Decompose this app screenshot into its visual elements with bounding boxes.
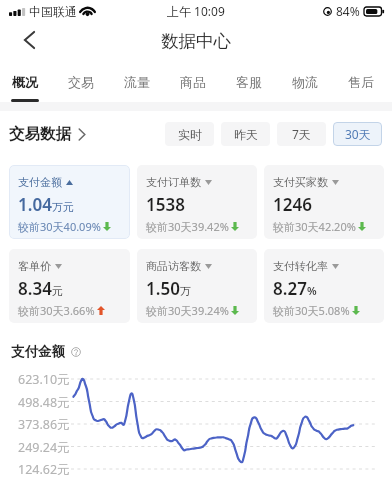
staticText: 8.27 xyxy=(273,277,307,300)
staticText: 较前30天5.08% xyxy=(273,303,350,318)
button[interactable]: 昨天 xyxy=(221,122,270,146)
button[interactable]: 交易数据 xyxy=(9,124,86,144)
staticText: 流量 xyxy=(124,74,150,90)
button[interactable]: 流量 xyxy=(109,60,165,104)
staticText: 249.24元 xyxy=(18,439,70,456)
button[interactable]: 客单价 xyxy=(9,249,130,323)
button[interactable]: 30天 xyxy=(333,122,382,146)
staticText: 1246 xyxy=(273,193,312,216)
staticText: 1538 xyxy=(146,193,185,216)
staticText: 7天 xyxy=(292,126,311,142)
staticText: 498.48元 xyxy=(18,394,70,411)
staticText: 较前30天39.24% xyxy=(146,303,229,318)
staticText: 1.04 xyxy=(18,193,52,216)
staticText: 客单价 xyxy=(18,259,51,273)
staticText: 8.34 xyxy=(18,277,52,300)
staticText: 万 xyxy=(180,284,191,298)
staticText: 较前30天40.09% xyxy=(18,219,101,234)
staticText: 交易数据 xyxy=(9,124,71,144)
staticText: 较前30天3.66% xyxy=(18,303,95,318)
staticText: 物流 xyxy=(292,74,318,90)
staticText: 支付买家数 xyxy=(273,175,328,189)
button[interactable]: 售后 xyxy=(333,60,389,104)
staticText: 昨天 xyxy=(234,127,258,142)
button[interactable]: 商品 xyxy=(165,60,221,104)
staticText: 623.10元 xyxy=(18,371,70,388)
staticText: 交易 xyxy=(68,74,94,90)
button[interactable]: 支付订单数 xyxy=(137,165,257,239)
staticText: 数据中心 xyxy=(161,30,231,52)
staticText: 373.86元 xyxy=(18,416,70,433)
staticText: 客服 xyxy=(236,74,262,90)
staticText: 元 xyxy=(52,284,63,298)
button[interactable]: 客服 xyxy=(221,60,277,104)
staticText: 支付金额 xyxy=(18,175,62,189)
staticText: 30天 xyxy=(345,126,371,142)
button[interactable]: 交易 xyxy=(53,60,109,104)
staticText: 1.50 xyxy=(146,277,180,300)
staticText: 商品访客数 xyxy=(146,259,201,273)
staticText: 上午 10:09 xyxy=(167,3,225,19)
staticText: 124.62元 xyxy=(18,461,70,478)
staticText: 万元 xyxy=(52,200,74,214)
staticText: 84% xyxy=(336,3,360,19)
button[interactable]: 概况 xyxy=(0,60,53,104)
staticText: 较前30天39.42% xyxy=(146,219,229,234)
button[interactable]: 实时 xyxy=(165,122,214,146)
staticText: 支付金额 xyxy=(11,343,65,360)
staticText: 实时 xyxy=(178,127,202,142)
staticText: 概况 xyxy=(12,74,38,90)
button[interactable]: Back xyxy=(13,24,45,56)
button[interactable]: 7天 xyxy=(277,122,326,146)
staticText: 支付订单数 xyxy=(146,175,201,189)
staticText: 支付转化率 xyxy=(273,259,328,273)
button[interactable]: 物流 xyxy=(277,60,333,104)
staticText: 较前30天42.20% xyxy=(273,219,356,234)
button[interactable]: 支付转化率 xyxy=(264,249,384,323)
staticText: 中国联通 xyxy=(29,4,77,19)
staticText: % xyxy=(307,283,317,298)
button[interactable]: 商品访客数 xyxy=(137,249,257,323)
button[interactable]: 支付买家数 xyxy=(264,165,384,239)
staticText: 售后 xyxy=(348,74,374,90)
button[interactable]: 支付金额 xyxy=(9,165,130,239)
staticText: 商品 xyxy=(180,74,206,90)
